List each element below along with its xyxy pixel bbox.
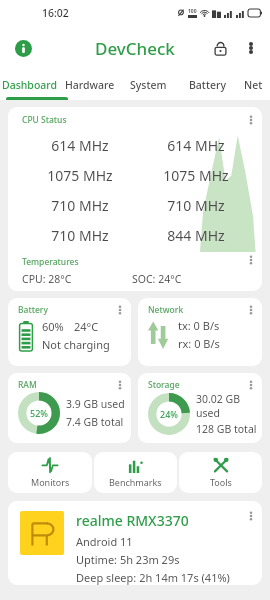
button[interactable]: Storage <box>138 373 262 443</box>
staticText: Benchmarks <box>109 476 162 488</box>
staticText: 128 GB total <box>196 422 257 436</box>
button[interactable]: Battery <box>178 70 237 100</box>
button[interactable]: Info <box>8 33 38 63</box>
staticText: 100 <box>188 8 197 15</box>
button[interactable]: System <box>119 70 178 100</box>
staticText: Net <box>244 78 263 92</box>
staticText: CPU Status <box>22 114 67 126</box>
button[interactable]: Card menu <box>111 301 129 319</box>
staticText: 16:02 <box>42 6 69 20</box>
staticText: 614 MHz <box>22 136 138 155</box>
staticText: 710 MHz <box>22 226 138 245</box>
button[interactable]: Tools <box>179 452 262 493</box>
staticText: realme RMX3370 <box>76 511 189 530</box>
button[interactable]: RAM <box>8 373 131 443</box>
staticText: 1075 MHz <box>22 166 138 185</box>
staticText: 710 MHz <box>22 196 138 215</box>
staticText: Temperatures <box>22 256 79 268</box>
button[interactable]: Net <box>237 70 270 100</box>
staticText: Battery <box>189 78 226 92</box>
staticText: 710 MHz <box>138 196 254 215</box>
button[interactable]: Dashboard <box>0 70 60 100</box>
button[interactable]: Card menu <box>242 376 260 394</box>
staticText: Android 11 <box>76 534 133 549</box>
button[interactable]: Network <box>138 298 262 366</box>
staticText: used <box>196 406 220 420</box>
staticText: 52% <box>30 407 48 419</box>
staticText: CPU: 28°C <box>22 272 132 286</box>
button[interactable]: CPU Status <box>8 107 262 291</box>
button[interactable]: Card menu <box>111 376 129 394</box>
button[interactable]: Card menu <box>242 301 260 319</box>
button[interactable]: Battery <box>8 298 131 366</box>
staticText: 7.4 GB total <box>66 415 124 429</box>
staticText: 60% <box>42 319 64 334</box>
staticText: Not charging <box>42 337 110 352</box>
staticText: Dashboard <box>2 78 58 92</box>
staticText: Hardware <box>65 78 115 92</box>
button[interactable]: Benchmarks <box>94 452 177 493</box>
staticText: System <box>130 78 167 92</box>
button[interactable]: Monitors <box>8 452 92 493</box>
staticText: 1075 MHz <box>138 166 254 185</box>
staticText: Monitors <box>31 476 70 488</box>
staticText: 614 MHz <box>138 136 254 155</box>
staticText: Uptime: 5h 23m 29s <box>76 552 180 567</box>
staticText: 24% <box>160 408 178 420</box>
staticText: 844 MHz <box>138 226 254 245</box>
button[interactable]: Unlock Pro <box>204 32 236 64</box>
staticText: DevCheck <box>95 37 175 60</box>
button[interactable]: Card menu <box>242 507 260 525</box>
staticText: Battery <box>18 304 48 316</box>
staticText: 24°C <box>74 319 99 334</box>
staticText: 3.9 GB used <box>66 397 125 411</box>
button[interactable]: Card menu <box>242 251 260 269</box>
button[interactable]: Card menu <box>242 111 260 129</box>
staticText: RAM <box>18 379 37 391</box>
staticText: Deep sleep: 2h 14m 17s (41%) <box>76 570 230 585</box>
button[interactable]: More options <box>236 33 266 63</box>
staticText: tx: 0 B/s <box>178 318 220 333</box>
staticText: SOC: 24°C <box>132 272 182 286</box>
button[interactable]: realme RMX3370 <box>8 501 262 585</box>
staticText: Storage <box>148 379 180 391</box>
staticText: Network <box>148 304 184 316</box>
staticText: rx: 0 B/s <box>178 336 220 351</box>
staticText: 30.02 GB <box>196 392 241 406</box>
staticText: Tools <box>210 476 232 488</box>
button[interactable]: Hardware <box>60 70 119 100</box>
